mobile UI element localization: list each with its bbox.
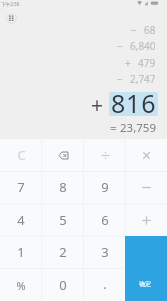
button[interactable]: Switch keyboard xyxy=(6,13,17,24)
staticText: + xyxy=(125,56,131,70)
staticText: 6 xyxy=(101,211,109,229)
staticText: % xyxy=(16,278,26,293)
staticText: 9 xyxy=(101,178,109,196)
button[interactable]: % xyxy=(0,269,42,301)
button[interactable]: 8 xyxy=(42,171,84,203)
staticText: 6,840 xyxy=(130,39,156,53)
button[interactable]: 1 xyxy=(0,236,42,268)
button[interactable]: Divide xyxy=(84,139,126,171)
button[interactable]: . xyxy=(84,269,126,301)
staticText: 8 xyxy=(59,178,67,196)
staticText: − xyxy=(131,23,137,37)
staticText: 2 xyxy=(59,243,67,261)
button[interactable]: 2 xyxy=(42,236,84,268)
staticText: 确定 xyxy=(139,280,151,288)
staticText: 下午2:36 xyxy=(1,1,20,7)
button[interactable]: Plus xyxy=(125,204,167,236)
staticText: 5 xyxy=(59,211,67,229)
staticText: 2,747 xyxy=(130,72,156,86)
button[interactable]: 9 xyxy=(84,171,126,203)
staticText: 7 xyxy=(17,178,25,196)
button[interactable]: C xyxy=(0,139,42,171)
button[interactable]: Minus xyxy=(125,171,167,203)
button[interactable]: 确定 xyxy=(125,236,167,301)
staticText: 479 xyxy=(138,56,156,70)
staticText: C xyxy=(17,146,26,164)
button[interactable]: 7 xyxy=(0,171,42,203)
staticText: 68 xyxy=(144,23,156,37)
button[interactable]: 4 xyxy=(0,204,42,236)
staticText: 0 xyxy=(59,276,67,294)
button[interactable]: 5 xyxy=(42,204,84,236)
button[interactable]: 6 xyxy=(84,204,126,236)
button[interactable]: 0 xyxy=(42,269,84,301)
staticText: 4 xyxy=(17,211,25,229)
button[interactable]: 3 xyxy=(84,236,126,268)
staticText: + xyxy=(91,91,104,120)
staticText: − xyxy=(117,39,123,53)
button[interactable]: Backspace xyxy=(42,139,84,171)
staticText: . xyxy=(103,275,107,293)
button[interactable]: Multiply xyxy=(125,139,167,171)
staticText: 1 xyxy=(17,243,25,261)
staticText: − xyxy=(117,72,123,86)
staticText: 816 xyxy=(111,86,157,120)
staticText: 3 xyxy=(101,243,109,261)
staticText: = xyxy=(110,120,117,136)
staticText: 23,759 xyxy=(120,120,156,136)
